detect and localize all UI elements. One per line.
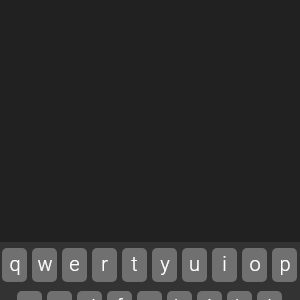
button[interactable]: Key k — [227, 291, 252, 300]
button[interactable]: Key j — [197, 291, 222, 300]
staticText: d — [84, 295, 96, 300]
button[interactable]: Key s — [47, 291, 72, 300]
button[interactable]: Key t — [122, 248, 147, 282]
staticText: e — [69, 252, 80, 275]
button[interactable]: Key q — [2, 248, 27, 282]
button[interactable]: Key e — [62, 248, 87, 282]
button[interactable]: Key u — [182, 248, 207, 282]
button[interactable]: Key l — [257, 291, 282, 300]
button[interactable]: Key r — [92, 248, 117, 282]
staticText: h — [174, 295, 185, 300]
button[interactable]: Key a — [17, 291, 42, 300]
staticText: r — [101, 252, 108, 275]
button[interactable]: Key g — [137, 291, 162, 300]
staticText: l — [267, 295, 272, 300]
staticText: q — [9, 252, 21, 275]
staticText: t — [131, 252, 138, 275]
button[interactable]: Key p — [272, 248, 297, 282]
staticText: k — [235, 295, 245, 300]
button[interactable]: Key i — [212, 248, 237, 282]
staticText: y — [160, 252, 170, 275]
button[interactable]: Key o — [242, 248, 267, 282]
staticText: o — [249, 252, 261, 275]
staticText: p — [279, 252, 291, 275]
button[interactable]: Key y — [152, 248, 177, 282]
button[interactable]: Key w — [32, 248, 57, 282]
button[interactable]: Key d — [77, 291, 102, 300]
staticText: j — [207, 295, 212, 300]
staticText: f — [116, 295, 123, 300]
staticText: w — [37, 252, 53, 275]
button[interactable]: Key h — [167, 291, 192, 300]
staticText: i — [222, 252, 227, 275]
staticText: u — [189, 252, 200, 275]
button[interactable]: Key f — [107, 291, 132, 300]
